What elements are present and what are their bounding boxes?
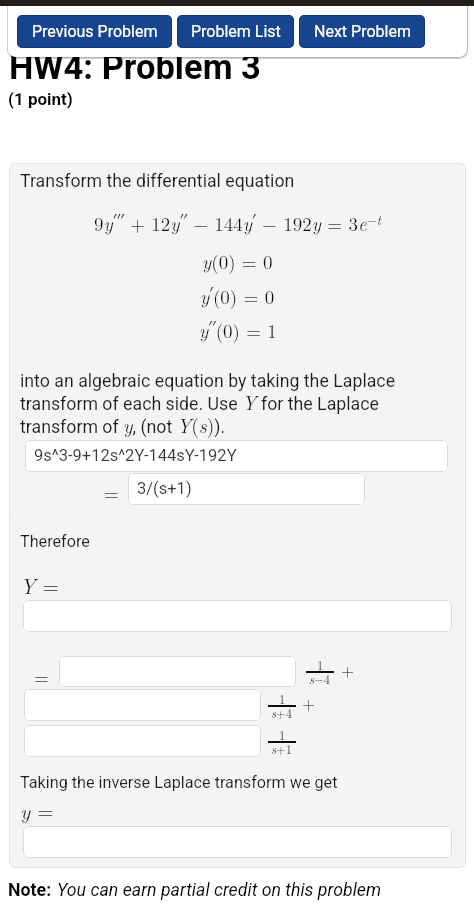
staticText: s+1: [271, 740, 293, 758]
staticText: Therefore: [20, 532, 90, 551]
staticText: y =: [20, 795, 54, 825]
staticText: into an algebraic equation by taking the…: [20, 371, 396, 439]
button[interactable]: 9s^3-9+12s^2Y-144sY-192Y: [25, 440, 448, 472]
staticText: Transform the differential equation: [20, 171, 295, 192]
staticText: 1: [317, 656, 324, 674]
staticText: Y =: [20, 570, 59, 600]
staticText: Note:: [8, 880, 52, 901]
staticText: s−4: [309, 670, 331, 688]
staticText: +: [302, 691, 316, 715]
staticText: s+4: [271, 704, 293, 722]
button[interactable]: [24, 725, 261, 757]
staticText: (1 point): [8, 89, 73, 109]
button[interactable]: Previous Problem: [17, 15, 172, 48]
staticText: Next Problem: [314, 22, 411, 41]
button[interactable]: 3/(s+1): [128, 473, 365, 505]
staticText: +: [341, 658, 355, 682]
staticText: =: [104, 479, 119, 506]
staticText: You can earn partial credit on this prob…: [57, 880, 382, 901]
staticText: =: [34, 663, 49, 690]
button[interactable]: [24, 689, 261, 721]
staticText: 1: [279, 690, 286, 708]
staticText: y′′(0) = 1: [199, 316, 277, 344]
staticText: HW4: Problem 3: [9, 47, 261, 87]
staticText: 1: [279, 726, 286, 744]
button[interactable]: Problem List: [177, 15, 294, 48]
button[interactable]: Next Problem: [299, 15, 425, 48]
staticText: Problem List: [191, 22, 281, 41]
staticText: 9s^3-9+12s^2Y-144sY-192Y: [34, 446, 237, 465]
staticText: y′(0) = 0: [200, 282, 275, 310]
staticText: 9y′′′ + 12y′′ − 144y′ − 192y = 3e−t: [94, 209, 382, 237]
staticText: Taking the inverse Laplace transform we …: [20, 773, 338, 792]
staticText: 3/(s+1): [137, 479, 192, 498]
staticText: y(0) = 0: [202, 248, 273, 275]
button[interactable]: [59, 656, 296, 687]
button[interactable]: [23, 600, 452, 632]
staticText: Previous Problem: [32, 22, 158, 41]
button[interactable]: [23, 826, 452, 858]
